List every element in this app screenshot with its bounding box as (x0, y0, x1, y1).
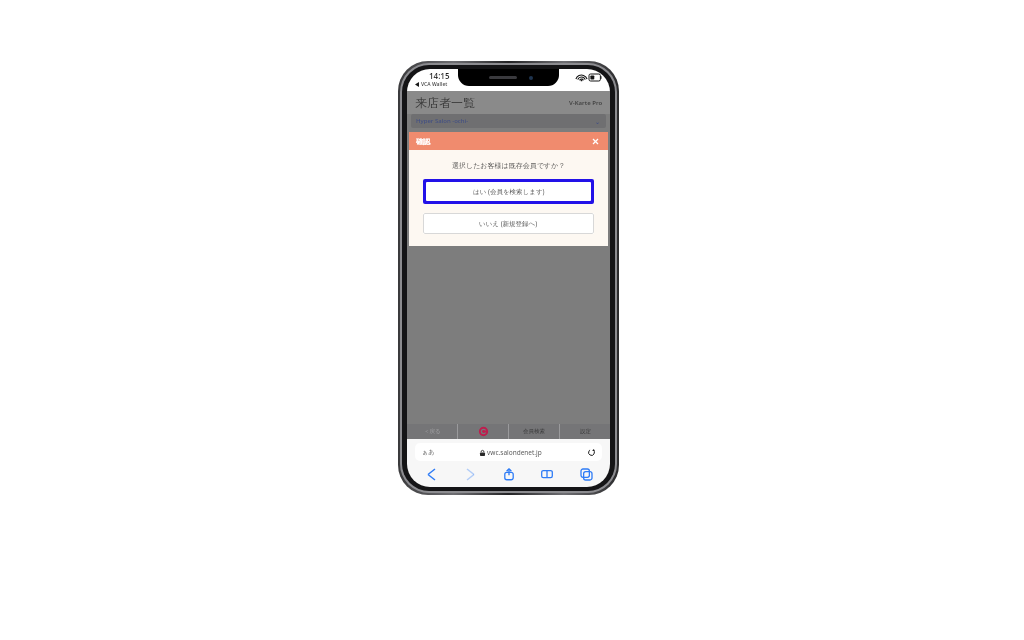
staticText: 設定 (580, 428, 591, 435)
button[interactable]: ＜戻る (407, 424, 457, 439)
staticText: vwc.salondenet.jp (487, 448, 542, 457)
button[interactable]: Hyper Salon -ochi- (411, 114, 606, 128)
button[interactable]: タブ (574, 465, 598, 483)
button[interactable]: 共有 (497, 465, 521, 483)
button[interactable]: 戻る (419, 465, 443, 483)
button[interactable]: 会員検索 (509, 424, 559, 439)
staticText: ぁあ (422, 448, 435, 456)
button[interactable]: ブックマーク (535, 465, 559, 483)
button[interactable]: 進む (458, 465, 482, 483)
staticText: Hyper Salon -ochi- (416, 117, 469, 125)
staticText: V-Karte Pro (569, 99, 603, 107)
button[interactable]: 設定 (560, 424, 610, 439)
staticText: 来店者一覧 (415, 95, 475, 110)
staticText: ＜戻る (424, 428, 441, 435)
staticText: 14:15 (429, 70, 450, 81)
button[interactable]: はい (会員を検索します) (426, 182, 591, 201)
staticText: はい (会員を検索します) (473, 187, 545, 196)
button[interactable]: 閉じる (590, 136, 601, 147)
staticText: 確認 (416, 137, 430, 146)
staticText: VCA Wallet (421, 81, 448, 88)
staticText: いいえ (新規登録へ) (479, 219, 538, 228)
button[interactable]: いいえ (新規登録へ) (423, 213, 594, 234)
button[interactable]: 更新 (458, 424, 508, 439)
staticText: ⌄ (595, 118, 601, 125)
staticText: 選択したお客様は既存会員ですか？ (452, 161, 566, 170)
staticText: 会員検索 (523, 428, 545, 435)
button[interactable]: ぁあ (415, 443, 602, 461)
